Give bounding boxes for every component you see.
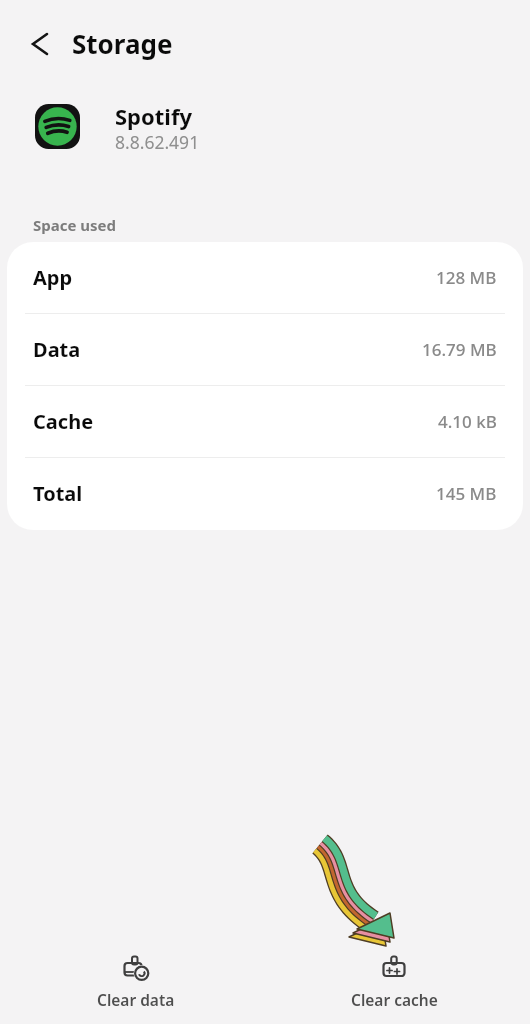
staticText: Clear data (97, 989, 175, 1010)
staticText: Storage (72, 26, 173, 61)
staticText: Total (33, 480, 83, 507)
button[interactable]: Clear data (76, 955, 196, 1010)
staticText: 145 MB (436, 482, 497, 505)
staticText: Cache (33, 408, 94, 435)
staticText: 4.10 kB (438, 410, 497, 433)
staticText: Space used (33, 215, 117, 235)
button[interactable] (18, 25, 56, 63)
staticText: 16.79 MB (422, 338, 497, 361)
staticText: 128 MB (436, 266, 497, 289)
button[interactable]: Clear cache (334, 955, 454, 1010)
staticText: Spotify (115, 101, 192, 130)
staticText: Clear cache (351, 989, 438, 1010)
staticText: Data (33, 336, 81, 363)
staticText: 8.8.62.491 (115, 130, 200, 154)
staticText: App (33, 264, 73, 291)
